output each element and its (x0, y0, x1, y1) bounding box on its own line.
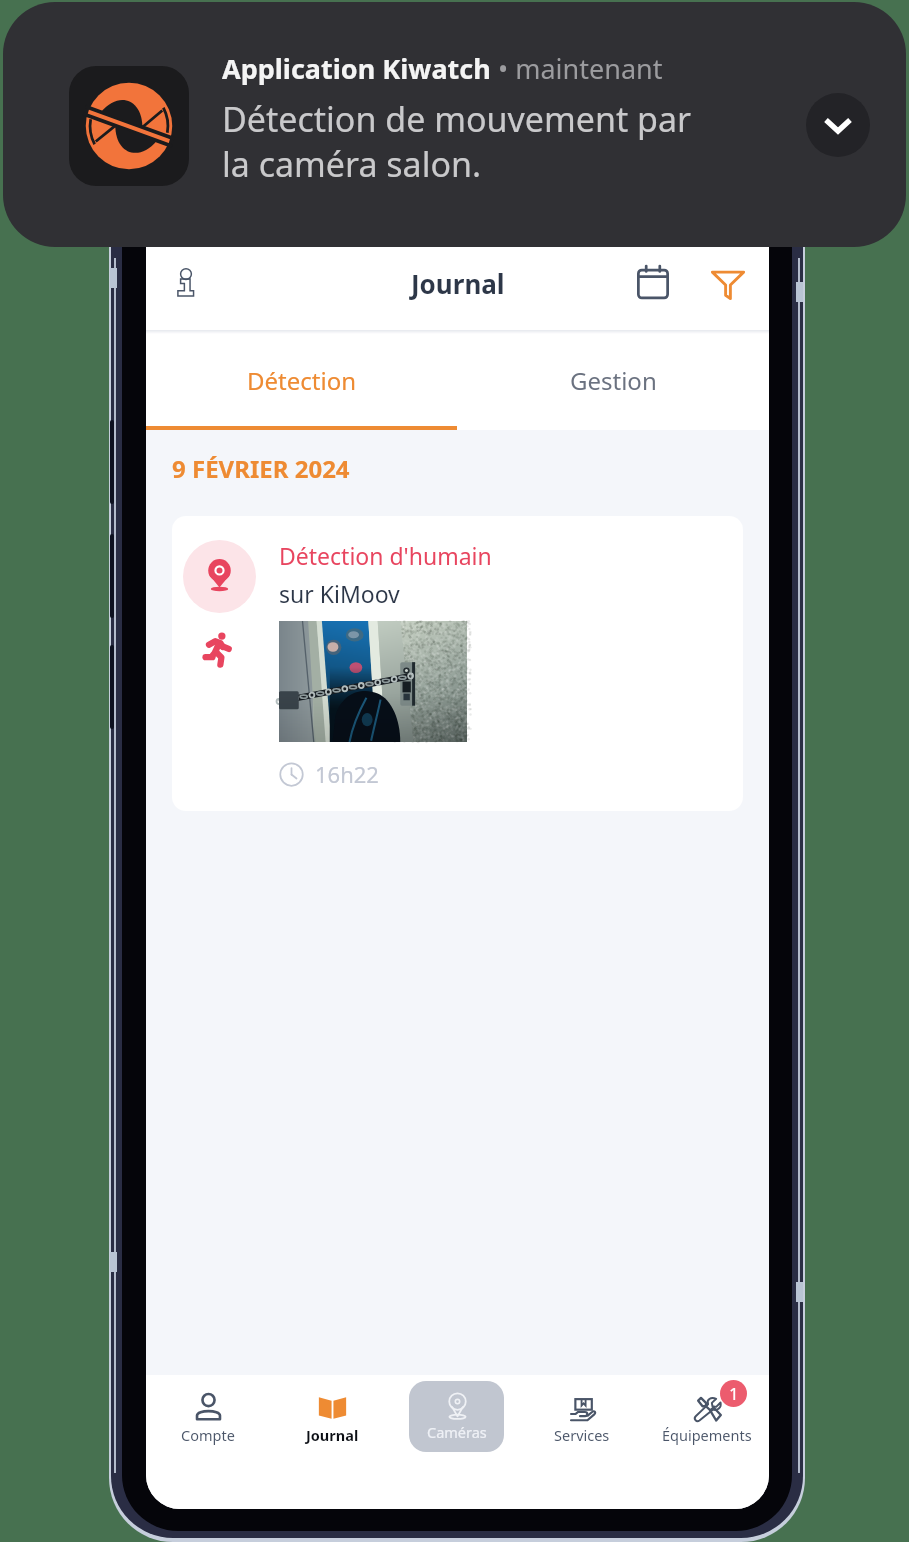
button[interactable]: Caméras (409, 1381, 504, 1452)
staticText: Caméras (427, 1422, 487, 1442)
staticText: • maintenant (491, 50, 663, 87)
staticText: Journal (306, 1425, 359, 1445)
staticText: Gestion (570, 364, 657, 397)
staticText: Détection de mouvement par la caméra sal… (222, 96, 692, 187)
button[interactable]: Détection (146, 334, 457, 426)
button[interactable]: Filtrer (702, 257, 754, 309)
staticText: Équipements (662, 1425, 752, 1445)
staticText: 9 FÉVRIER 2024 (172, 452, 350, 485)
staticText: Application Kiwatch (222, 50, 491, 87)
staticText: Compte (181, 1425, 235, 1445)
button[interactable]: Informations (160, 257, 212, 309)
staticText: Détection (247, 364, 356, 397)
staticText: 1 (729, 1382, 739, 1405)
staticText: Journal (411, 266, 505, 301)
button[interactable]: Services (519, 1392, 644, 1445)
staticText: Services (554, 1425, 610, 1445)
button[interactable]: Application Kiwatch (3, 2, 906, 247)
staticText: 16h22 (315, 759, 379, 789)
button[interactable]: 1 (644, 1392, 769, 1445)
button[interactable]: Gestion (457, 334, 769, 426)
button[interactable]: Compte (146, 1392, 270, 1445)
button[interactable]: Journal (270, 1392, 394, 1445)
button[interactable]: Détection d'humain (172, 516, 743, 811)
button[interactable]: Développer la notification (806, 93, 870, 157)
button[interactable]: Calendrier (627, 257, 679, 309)
staticText: sur KiMoov (279, 578, 400, 609)
staticText: Détection d'humain (279, 540, 492, 571)
